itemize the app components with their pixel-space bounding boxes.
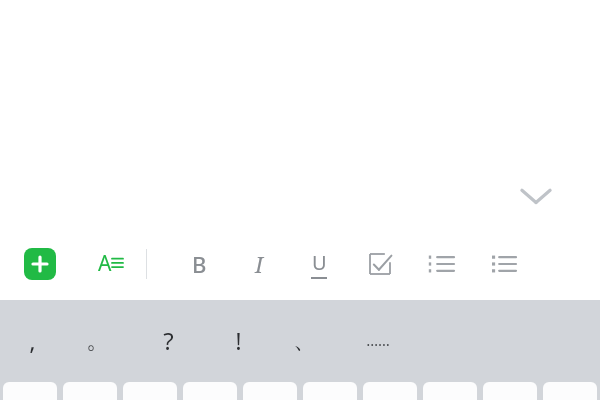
button[interactable]: Key — [243, 382, 297, 400]
staticText: A — [98, 249, 112, 278]
button[interactable]: Insert — [12, 227, 68, 300]
staticText: 。 — [86, 325, 110, 355]
button[interactable]: Key — [123, 382, 177, 400]
button[interactable]: Bold — [169, 227, 229, 300]
button[interactable]: Checklist — [349, 227, 411, 300]
staticText: ! — [235, 324, 242, 357]
button[interactable]: Collapse — [506, 173, 566, 219]
staticText: I — [255, 249, 264, 279]
button[interactable]: 、 — [277, 312, 333, 368]
button[interactable]: Key — [63, 382, 117, 400]
staticText: …… — [366, 330, 390, 350]
button[interactable]: Italic — [229, 227, 289, 300]
staticText: U — [312, 249, 327, 276]
button[interactable]: Key — [483, 382, 537, 400]
button[interactable]: Key — [183, 382, 237, 400]
button[interactable]: Key — [3, 382, 57, 400]
staticText: ? — [163, 324, 174, 357]
button[interactable]: ? — [140, 312, 196, 368]
button[interactable]: Numbered list — [411, 227, 473, 300]
button[interactable]: Bulleted list — [473, 227, 535, 300]
button[interactable]: Key — [543, 382, 597, 400]
button[interactable]: ! — [210, 312, 266, 368]
button[interactable]: Key — [423, 382, 477, 400]
staticText: , — [29, 324, 36, 357]
button[interactable]: Underline — [289, 227, 349, 300]
staticText: 、 — [293, 325, 317, 355]
button[interactable]: Key — [303, 382, 357, 400]
staticText: B — [192, 249, 207, 279]
button[interactable]: Key — [363, 382, 417, 400]
button[interactable]: Text style — [82, 227, 138, 300]
button[interactable]: , — [4, 312, 60, 368]
button[interactable]: 。 — [70, 312, 126, 368]
button[interactable]: …… — [350, 312, 406, 368]
